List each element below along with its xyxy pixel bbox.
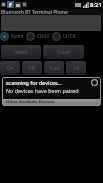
staticText: 8:21 bbox=[90, 1, 102, 9]
staticText: Other Available Devices bbox=[6, 99, 55, 105]
staticText: Send bbox=[15, 49, 28, 56]
staticText: CR/LF bbox=[37, 33, 50, 40]
button[interactable]: Clear bbox=[43, 45, 84, 59]
button[interactable]: On bbox=[0, 61, 20, 75]
staticText: Scan bbox=[49, 65, 60, 71]
button[interactable]: LF/CR bbox=[52, 32, 78, 41]
button[interactable]: Scan bbox=[44, 61, 64, 75]
button[interactable]: Send bbox=[1, 45, 41, 59]
button[interactable]: None bbox=[0, 32, 26, 41]
staticText: Bluetooth BT Terminal Phone bbox=[1, 9, 68, 15]
staticText: On bbox=[7, 65, 14, 71]
staticText: Clear bbox=[57, 49, 70, 56]
button[interactable]: CR/LF bbox=[26, 32, 52, 41]
staticText: No devices have been paired bbox=[6, 87, 79, 94]
staticText: LF/CR bbox=[63, 33, 76, 40]
staticText: f bbox=[9, 1, 12, 8]
staticText: scanning for devices... bbox=[6, 79, 62, 86]
staticText: OK bbox=[73, 65, 80, 71]
button[interactable]: Off bbox=[22, 61, 42, 75]
button[interactable]: Other Available Devices bbox=[3, 99, 100, 105]
staticText: Off bbox=[28, 65, 36, 71]
staticText: None bbox=[11, 33, 24, 40]
button[interactable]: OK bbox=[66, 61, 86, 75]
other: Scanning progress bbox=[91, 79, 98, 86]
